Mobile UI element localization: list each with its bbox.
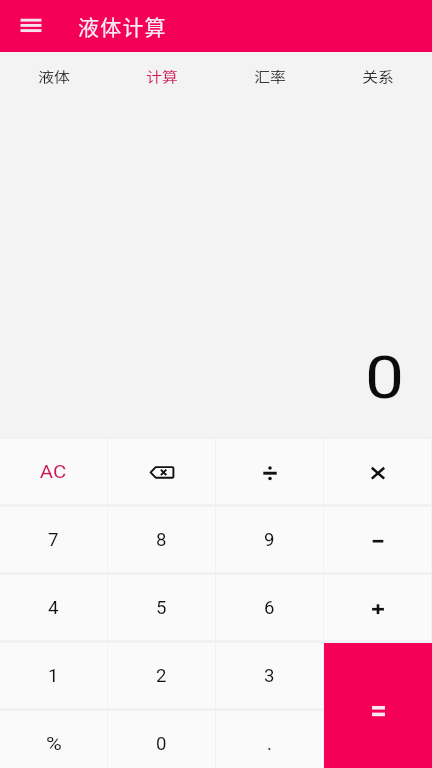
button[interactable]: 0 [108, 711, 215, 768]
button[interactable]: 5 [108, 575, 215, 640]
staticText: 0 [365, 342, 405, 411]
staticText: 8 [156, 529, 167, 551]
button[interactable]: Divide [216, 439, 323, 504]
button[interactable]: 2 [108, 643, 215, 708]
staticText: 7 [48, 529, 59, 551]
button[interactable]: AC [0, 439, 107, 504]
staticText: 关系 [362, 66, 394, 85]
button[interactable]: 3 [216, 643, 323, 708]
button[interactable]: 9 [216, 507, 323, 572]
button[interactable]: Multiply [324, 439, 431, 504]
staticText: 9 [264, 529, 275, 551]
staticText: % [46, 733, 62, 755]
button[interactable]: Equals [324, 643, 432, 768]
button[interactable]: 4 [0, 575, 107, 640]
button[interactable]: Minus [324, 507, 431, 572]
button[interactable]: 汇率 [216, 52, 324, 100]
button[interactable]: % [0, 711, 107, 768]
button[interactable]: 7 [0, 507, 107, 572]
button[interactable]: 1 [0, 643, 107, 708]
staticText: . [267, 733, 272, 755]
staticText: 汇率 [254, 66, 286, 85]
staticText: 2 [156, 665, 167, 687]
staticText: 计算 [146, 66, 178, 85]
staticText: 4 [48, 597, 59, 619]
staticText: 1 [48, 665, 59, 687]
button[interactable]: 液体 [0, 52, 108, 100]
staticText: 5 [156, 597, 167, 619]
button[interactable]: Backspace [108, 439, 215, 504]
button[interactable]: Plus [324, 575, 431, 640]
staticText: 液体 [38, 66, 70, 85]
button[interactable]: 计算 [108, 52, 216, 100]
staticText: AC [40, 461, 67, 483]
staticText: 6 [264, 597, 275, 619]
staticText: 0 [156, 733, 167, 755]
button[interactable]: 8 [108, 507, 215, 572]
button[interactable]: Open navigation menu [0, 2, 62, 50]
staticText: 3 [264, 665, 275, 687]
button[interactable]: 6 [216, 575, 323, 640]
button[interactable]: 关系 [324, 52, 432, 100]
staticText: 液体计算 [78, 11, 167, 41]
button[interactable]: . [216, 711, 323, 768]
